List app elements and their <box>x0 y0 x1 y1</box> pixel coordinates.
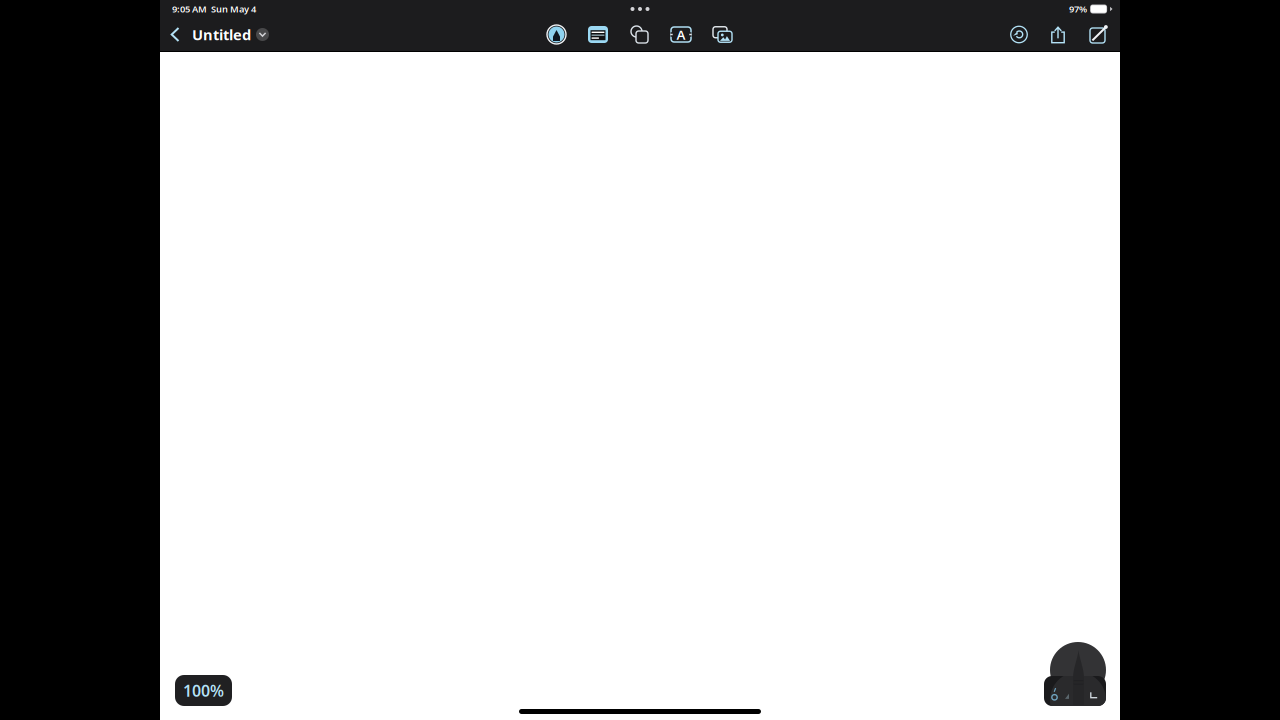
staticText: A <box>676 26 685 43</box>
button[interactable]: Back <box>163 20 187 48</box>
button[interactable]: Shapes <box>627 21 651 47</box>
button[interactable]: Pen tool <box>544 21 568 47</box>
button[interactable]: Brush <box>1051 690 1058 700</box>
staticText: 97% <box>1069 3 1087 15</box>
staticText: Untitled <box>192 25 251 44</box>
button[interactable]: Text tool <box>669 21 693 47</box>
button[interactable]: Undo <box>1008 23 1030 45</box>
button[interactable]: Share <box>1047 23 1069 45</box>
button[interactable]: 100% <box>175 675 232 706</box>
staticText: 100% <box>183 680 224 701</box>
staticText: 9:05 AM Sun May 4 <box>172 3 256 15</box>
button[interactable]: Inspector <box>586 21 610 47</box>
button[interactable]: Selected tool <box>1044 642 1106 706</box>
button[interactable]: New layer <box>1086 23 1107 45</box>
button[interactable]: Crop <box>1090 691 1098 698</box>
button[interactable]: Pencil <box>1063 690 1070 699</box>
button[interactable]: Untitled <box>187 20 275 49</box>
button[interactable]: Images <box>710 21 734 47</box>
